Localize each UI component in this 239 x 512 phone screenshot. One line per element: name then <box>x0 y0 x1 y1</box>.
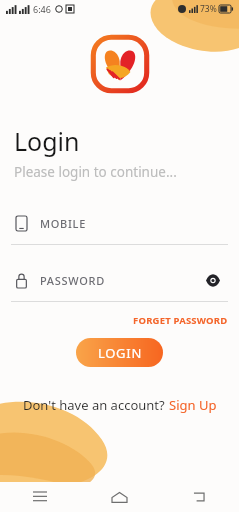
staticText: MOBILE <box>40 216 87 231</box>
button[interactable]: LOGIN <box>76 338 163 367</box>
button[interactable]: FORGET PASSWORD <box>133 312 239 329</box>
staticText: Sign Up <box>169 396 217 414</box>
staticText: Please login to continue... <box>14 163 177 181</box>
button[interactable]: Sign Up <box>169 396 217 414</box>
staticText: FORGET PASSWORD <box>133 314 228 327</box>
staticText: PASSWORD <box>40 273 105 288</box>
button[interactable]: Home <box>79 482 159 512</box>
button[interactable]: MOBILE <box>0 208 239 245</box>
staticText: 6:46 <box>33 3 51 15</box>
button[interactable]: Back <box>159 482 239 512</box>
button[interactable]: Show password <box>203 270 223 290</box>
staticText: LOGIN <box>98 344 142 362</box>
staticText: Login <box>14 124 80 158</box>
button[interactable]: Recents <box>0 482 79 512</box>
staticText: 73% <box>200 3 217 15</box>
button[interactable]: PASSWORD <box>0 265 239 302</box>
staticText: Don't have an account? <box>23 396 169 414</box>
